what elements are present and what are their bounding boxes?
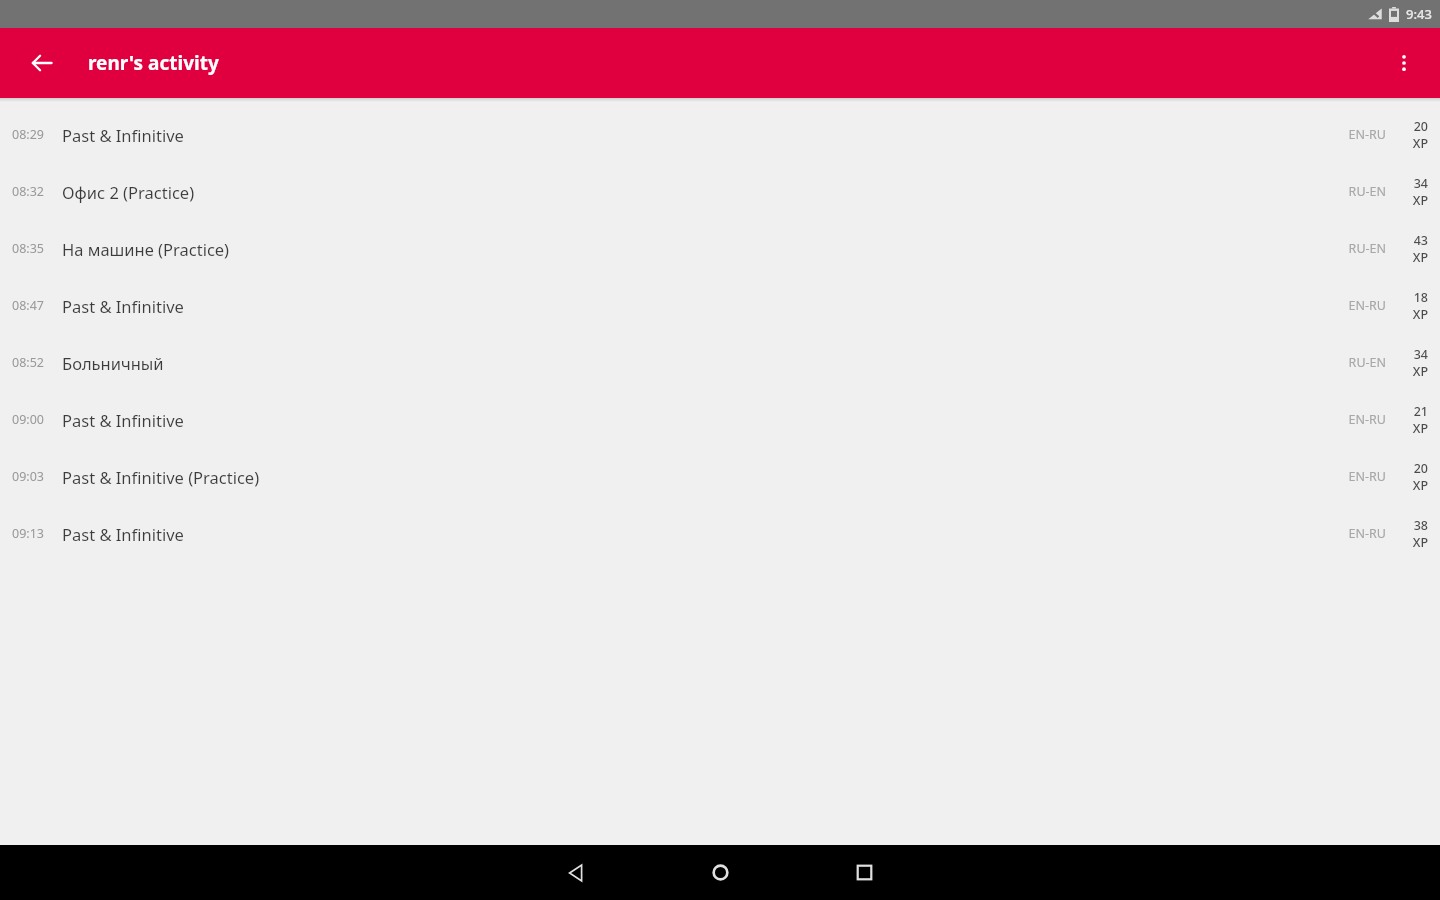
staticText: 43 XP bbox=[1396, 232, 1428, 266]
staticText: RU-EN bbox=[1330, 183, 1386, 200]
button[interactable]: 08:47 bbox=[0, 277, 1440, 334]
staticText: 09:13 bbox=[12, 525, 44, 542]
staticText: renr's activity bbox=[88, 50, 219, 76]
staticText: 9:43 bbox=[1406, 5, 1432, 23]
staticText: Больничный bbox=[62, 352, 1330, 374]
button[interactable]: 09:00 bbox=[0, 391, 1440, 448]
button[interactable]: Back bbox=[504, 845, 648, 900]
staticText: Past & Infinitive bbox=[62, 124, 1330, 146]
staticText: EN-RU bbox=[1330, 468, 1386, 485]
staticText: EN-RU bbox=[1330, 411, 1386, 428]
staticText: 08:32 bbox=[12, 183, 44, 200]
staticText: На машине (Practice) bbox=[62, 238, 1330, 260]
staticText: 21 XP bbox=[1396, 403, 1428, 437]
staticText: Past & Infinitive bbox=[62, 409, 1330, 431]
button[interactable]: 09:03 bbox=[0, 448, 1440, 505]
staticText: 20 XP bbox=[1396, 118, 1428, 152]
button[interactable]: Recent apps bbox=[792, 845, 936, 900]
staticText: 18 XP bbox=[1396, 289, 1428, 323]
staticText: Past & Infinitive bbox=[62, 523, 1330, 545]
button[interactable]: 08:29 bbox=[0, 106, 1440, 163]
staticText: EN-RU bbox=[1330, 297, 1386, 314]
button[interactable]: Home bbox=[648, 845, 792, 900]
staticText: 08:47 bbox=[12, 297, 44, 314]
staticText: RU-EN bbox=[1330, 240, 1386, 257]
button[interactable]: More options bbox=[1380, 39, 1428, 87]
button[interactable]: 09:13 bbox=[0, 505, 1440, 562]
staticText: EN-RU bbox=[1330, 126, 1386, 143]
staticText: 09:03 bbox=[12, 468, 44, 485]
button[interactable]: 08:35 bbox=[0, 220, 1440, 277]
button[interactable]: 08:52 bbox=[0, 334, 1440, 391]
staticText: Past & Infinitive (Practice) bbox=[62, 466, 1330, 488]
staticText: Past & Infinitive bbox=[62, 295, 1330, 317]
button[interactable]: 08:32 bbox=[0, 163, 1440, 220]
staticText: 20 XP bbox=[1396, 460, 1428, 494]
staticText: 09:00 bbox=[12, 411, 44, 428]
staticText: RU-EN bbox=[1330, 354, 1386, 371]
staticText: 08:35 bbox=[12, 240, 44, 257]
staticText: 08:52 bbox=[12, 354, 44, 371]
staticText: EN-RU bbox=[1330, 525, 1386, 542]
staticText: 38 XP bbox=[1396, 517, 1428, 551]
staticText: 34 XP bbox=[1396, 175, 1428, 209]
button[interactable]: Back bbox=[18, 39, 66, 87]
staticText: 08:29 bbox=[12, 126, 44, 143]
staticText: 34 XP bbox=[1396, 346, 1428, 380]
staticText: Офис 2 (Practice) bbox=[62, 181, 1330, 203]
